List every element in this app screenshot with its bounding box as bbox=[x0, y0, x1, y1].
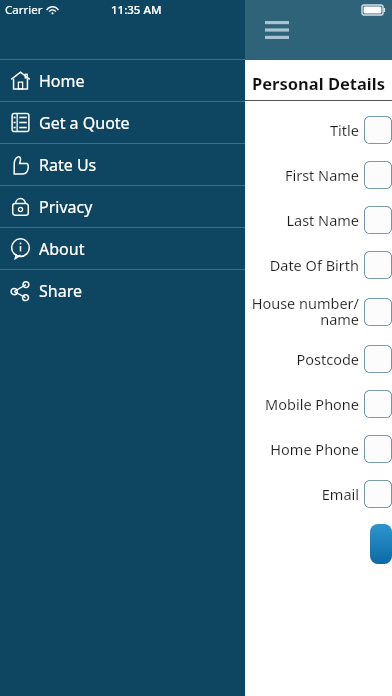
staticText: Privacy bbox=[39, 196, 93, 218]
button[interactable] bbox=[364, 345, 392, 373]
button[interactable] bbox=[364, 251, 392, 279]
staticText: Postcode bbox=[245, 349, 359, 369]
staticText: Home Phone bbox=[245, 439, 359, 459]
button[interactable] bbox=[364, 116, 392, 144]
button[interactable]: Open navigation menu bbox=[255, 8, 299, 52]
button[interactable]: Rate Us bbox=[0, 144, 245, 185]
button[interactable]: Get a Quote bbox=[0, 102, 245, 143]
button[interactable] bbox=[364, 390, 392, 418]
button[interactable]: Submit bbox=[370, 524, 392, 564]
button[interactable]: Home bbox=[0, 60, 245, 101]
staticText: Get a Quote bbox=[39, 112, 130, 134]
button[interactable] bbox=[364, 161, 392, 189]
staticText: Email bbox=[245, 484, 359, 504]
button[interactable] bbox=[364, 480, 392, 508]
staticText: House number/ name bbox=[245, 293, 359, 330]
staticText: Last Name bbox=[245, 210, 359, 230]
button[interactable] bbox=[364, 435, 392, 463]
button[interactable]: About bbox=[0, 228, 245, 269]
button[interactable]: Share bbox=[0, 270, 245, 311]
staticText: Mobile Phone bbox=[245, 394, 359, 414]
staticText: Personal Details bbox=[252, 72, 385, 94]
staticText: Carrier bbox=[5, 2, 43, 18]
staticText: About bbox=[39, 238, 85, 260]
button[interactable] bbox=[364, 298, 392, 326]
staticText: Rate Us bbox=[39, 154, 97, 176]
staticText: Date Of Birth bbox=[245, 255, 359, 275]
staticText: Share bbox=[39, 280, 82, 302]
button[interactable] bbox=[364, 206, 392, 234]
button[interactable]: Privacy bbox=[0, 186, 245, 227]
staticText: First Name bbox=[245, 165, 359, 185]
staticText: 11:35 AM bbox=[111, 2, 162, 18]
staticText: Title bbox=[245, 120, 359, 140]
staticText: Home bbox=[39, 70, 85, 92]
